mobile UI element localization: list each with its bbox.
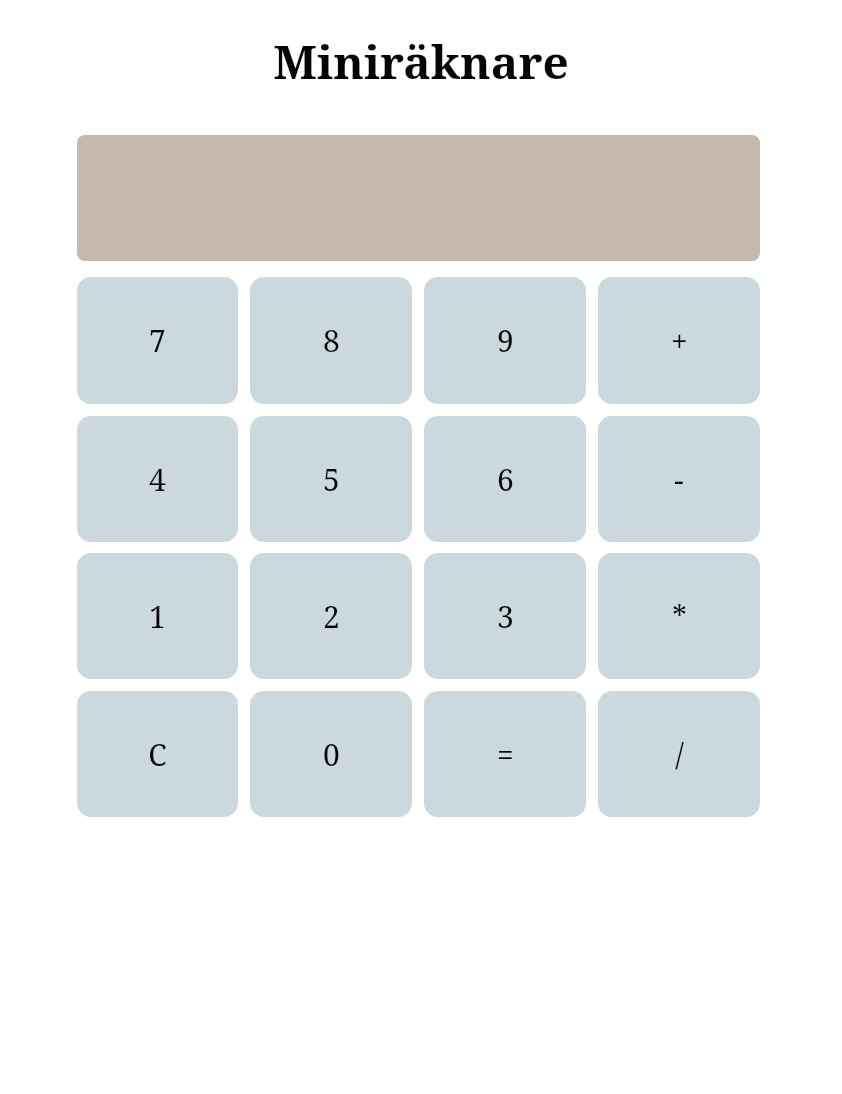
staticText: * xyxy=(672,596,687,637)
button[interactable]: 6 xyxy=(424,416,586,542)
button[interactable]: 0 xyxy=(250,691,412,817)
staticText: 1 xyxy=(149,596,166,637)
button[interactable]: 1 xyxy=(77,553,238,679)
button[interactable]: 2 xyxy=(250,553,412,679)
staticText: 9 xyxy=(497,320,514,361)
staticText: 3 xyxy=(497,596,514,637)
staticText: Miniräknare xyxy=(273,30,569,93)
button[interactable]: = xyxy=(424,691,586,817)
staticText: - xyxy=(674,459,684,500)
button[interactable]: 9 xyxy=(424,277,586,404)
button[interactable]: * xyxy=(598,553,760,679)
staticText: 6 xyxy=(497,459,514,500)
button[interactable]: / xyxy=(598,691,760,817)
button[interactable]: 5 xyxy=(250,416,412,542)
staticText: 4 xyxy=(149,459,166,500)
staticText: 0 xyxy=(323,734,340,775)
staticText: + xyxy=(671,320,688,361)
button[interactable]: + xyxy=(598,277,760,404)
staticText: / xyxy=(675,734,684,775)
button[interactable]: C xyxy=(77,691,238,817)
button[interactable]: 7 xyxy=(77,277,238,404)
button[interactable]: 3 xyxy=(424,553,586,679)
staticText: 2 xyxy=(323,596,340,637)
button[interactable]: 8 xyxy=(250,277,412,404)
button[interactable]: 4 xyxy=(77,416,238,542)
button[interactable]: - xyxy=(598,416,760,542)
staticText: 7 xyxy=(149,320,166,361)
staticText: C xyxy=(148,734,167,775)
staticText: 8 xyxy=(323,320,340,361)
staticText: = xyxy=(497,734,514,775)
staticText: 5 xyxy=(323,459,340,500)
